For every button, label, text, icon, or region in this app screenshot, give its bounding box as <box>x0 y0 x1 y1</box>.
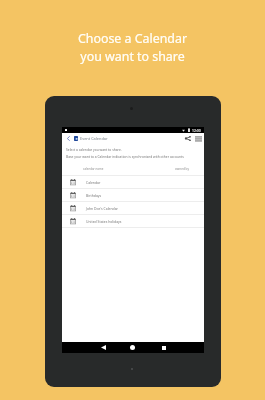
staticText: John Doe's Calendar <box>86 206 118 211</box>
staticText: Birthdays <box>86 193 102 198</box>
button[interactable]: Recents <box>158 342 169 353</box>
staticText: Base your want to a Calendar indication … <box>66 154 184 158</box>
button[interactable]: Birthdays <box>62 189 204 201</box>
staticText: Event Calendar <box>80 136 108 141</box>
button[interactable]: John Doe's Calendar <box>62 202 204 214</box>
button[interactable]: United States holidays <box>62 215 204 227</box>
button[interactable]: Back <box>98 342 109 353</box>
staticText: owned by <box>175 167 190 171</box>
button[interactable]: Menu <box>194 134 203 143</box>
staticText: 12:00 <box>192 128 201 133</box>
staticText: Select a calendar you want to share. <box>66 147 122 151</box>
button[interactable]: Back <box>65 135 72 142</box>
button[interactable]: Share <box>183 134 192 143</box>
staticText: calendar name <box>83 167 104 171</box>
staticText: Choose a Calendar you want to share <box>0 30 265 64</box>
button[interactable]: Home <box>127 342 138 353</box>
button[interactable]: Calendar <box>62 176 204 188</box>
staticText: United States holidays <box>86 219 122 224</box>
staticText: Calendar <box>86 180 101 185</box>
